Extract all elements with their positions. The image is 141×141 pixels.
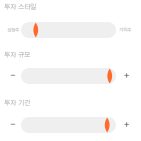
staticText: 가치주 xyxy=(119,28,131,32)
staticText: 투자 기간 xyxy=(4,100,30,106)
staticText: + xyxy=(124,71,129,81)
button[interactable] xyxy=(21,117,116,133)
staticText: − xyxy=(10,71,16,81)
staticText: + xyxy=(124,120,129,130)
staticText: 성장주 xyxy=(7,28,19,32)
staticText: 투자 규모 xyxy=(4,52,30,58)
button[interactable] xyxy=(21,22,116,38)
button[interactable] xyxy=(21,68,116,84)
staticText: − xyxy=(10,120,16,130)
staticText: 투자 스타일 xyxy=(4,4,36,10)
